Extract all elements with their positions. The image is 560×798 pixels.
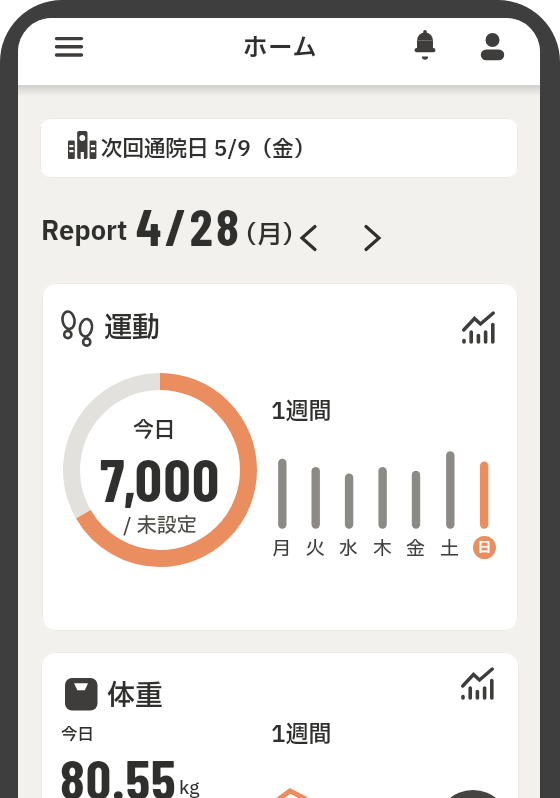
button[interactable]: 運動 <box>42 283 518 631</box>
staticText: 火 <box>306 535 326 561</box>
staticText: 土 <box>440 535 460 561</box>
staticText: 今日 <box>61 723 94 748</box>
staticText: 体重 <box>107 675 164 717</box>
staticText: 80.55 <box>60 744 177 798</box>
staticText: 次回通院日 5/9（金） <box>101 133 316 165</box>
staticText: kg <box>179 775 200 798</box>
button[interactable] <box>436 790 510 798</box>
button[interactable]: 月 <box>265 535 299 561</box>
staticText: 4/28 <box>136 194 243 256</box>
staticText: （月） <box>232 217 308 254</box>
button[interactable]: 土 <box>433 535 467 561</box>
button[interactable]: 木 <box>366 535 400 561</box>
button[interactable]: 日 <box>473 536 496 559</box>
staticText: 今日 <box>133 415 175 446</box>
button[interactable] <box>405 18 445 74</box>
button[interactable]: 金 <box>399 535 433 561</box>
button[interactable] <box>46 19 92 75</box>
staticText: / 未設定 <box>123 511 197 541</box>
staticText: 水 <box>339 535 359 561</box>
staticText: 月 <box>272 535 292 561</box>
staticText: 1週間 <box>271 395 332 425</box>
button[interactable]: 次回通院日 5/9（金） <box>40 118 518 178</box>
staticText: 木 <box>373 535 393 561</box>
button[interactable] <box>354 218 390 258</box>
staticText: 1週間 <box>271 718 332 748</box>
button[interactable] <box>290 218 326 258</box>
staticText: ホーム <box>243 30 318 67</box>
button[interactable]: 水 <box>332 535 366 561</box>
button[interactable]: 体重 <box>41 652 519 798</box>
staticText: Report <box>41 212 128 251</box>
staticText: 運動 <box>104 307 161 349</box>
staticText: 金 <box>406 535 426 561</box>
staticText: 日 <box>478 538 492 557</box>
staticText: 7,000 <box>100 442 221 512</box>
button[interactable]: 火 <box>299 535 333 561</box>
button[interactable] <box>470 19 514 75</box>
